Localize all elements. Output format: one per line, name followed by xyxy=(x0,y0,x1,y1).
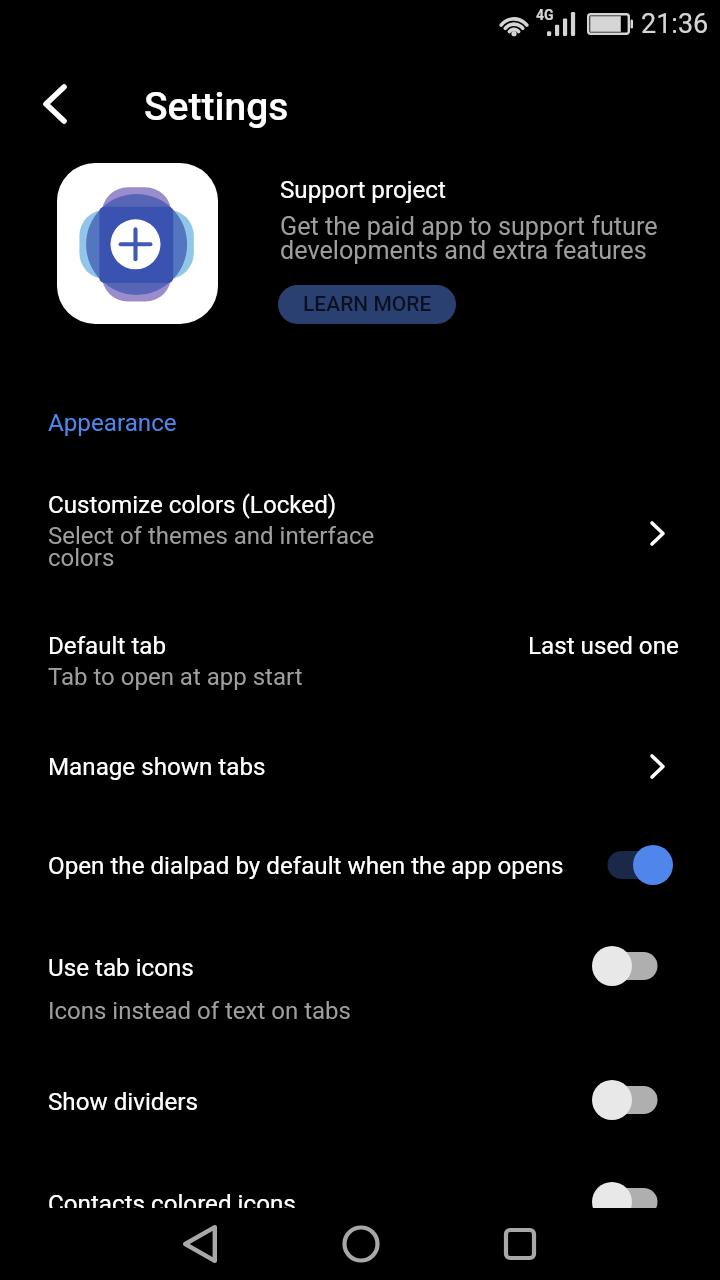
button[interactable]: Contacts colored icons xyxy=(0,1176,720,1232)
button[interactable]: LEARN MORE xyxy=(278,285,456,324)
staticText: 4G xyxy=(536,7,554,23)
staticText: Use tab icons xyxy=(48,954,194,982)
button[interactable]: Back xyxy=(172,1213,228,1275)
button[interactable]: Toggle off xyxy=(592,1180,673,1224)
staticText: LEARN MORE xyxy=(303,292,432,317)
staticText: Show dividers xyxy=(48,1088,198,1116)
button[interactable]: Toggle on xyxy=(592,843,673,887)
staticText: Support project xyxy=(280,176,446,204)
staticText: Get the paid app to support future devel… xyxy=(280,212,658,265)
button[interactable]: Toggle off xyxy=(592,1078,673,1122)
button[interactable]: Default tab xyxy=(0,618,720,708)
staticText: Contacts colored icons xyxy=(48,1190,296,1218)
staticText: 21:36 xyxy=(641,8,709,40)
button[interactable]: Customize colors (Locked) xyxy=(0,477,720,595)
staticText: Customize colors (Locked) xyxy=(48,491,337,519)
staticText: Default tab xyxy=(48,632,167,660)
button[interactable]: Toggle off xyxy=(592,944,673,988)
button[interactable]: Show dividers xyxy=(0,1074,720,1130)
button[interactable]: Open the dialpad by default when the app… xyxy=(0,838,720,894)
button[interactable]: Recent apps xyxy=(492,1213,548,1275)
button[interactable]: Use tab icons xyxy=(0,940,720,1030)
staticText: Open the dialpad by default when the app… xyxy=(48,852,564,880)
staticText: Appearance xyxy=(48,409,177,437)
button[interactable]: Manage shown tabs xyxy=(0,739,720,795)
button[interactable]: Home xyxy=(333,1213,389,1275)
staticText: Last used one xyxy=(528,632,679,660)
staticText: Settings xyxy=(144,84,289,130)
button[interactable] xyxy=(57,163,218,324)
staticText: Manage shown tabs xyxy=(48,753,266,781)
staticText: Icons instead of text on tabs xyxy=(48,997,351,1025)
staticText: Select of themes and interface colors xyxy=(48,522,375,572)
button[interactable]: Back xyxy=(26,75,84,133)
staticText: Tab to open at app start xyxy=(48,663,303,691)
